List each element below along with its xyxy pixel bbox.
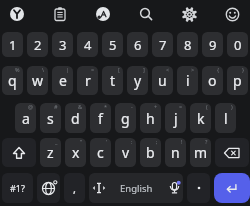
button[interactable]: 7	[152, 32, 173, 57]
button[interactable]: o	[202, 66, 223, 95]
staticText: English	[120, 182, 153, 195]
button[interactable]: x	[65, 138, 86, 167]
button[interactable]	[187, 173, 210, 203]
button[interactable]: f	[90, 103, 111, 133]
button[interactable]: h	[140, 103, 161, 133]
button[interactable]: a	[15, 103, 36, 133]
staticText: \	[42, 66, 45, 73]
button[interactable]: s	[40, 103, 61, 133]
button[interactable]: #1?	[2, 173, 33, 203]
staticText: #	[54, 103, 58, 110]
staticText: %	[15, 66, 20, 73]
button[interactable]	[37, 173, 60, 203]
button[interactable]: u	[152, 66, 173, 95]
staticText: p	[233, 71, 242, 90]
button[interactable]	[214, 173, 250, 203]
staticText: '	[106, 138, 108, 145]
staticText: r	[85, 71, 91, 90]
staticText: o	[208, 71, 217, 90]
button[interactable]: y	[127, 66, 148, 95]
staticText: =	[91, 66, 95, 73]
staticText: 5	[109, 36, 117, 54]
staticText: d	[71, 109, 80, 128]
button[interactable]: m	[190, 138, 211, 167]
button[interactable]: c	[90, 138, 111, 167]
staticText: b	[146, 143, 155, 162]
button[interactable]: q	[2, 66, 23, 95]
button[interactable]: t	[102, 66, 123, 95]
staticText: >	[191, 66, 195, 73]
staticText: }	[242, 66, 245, 73]
staticText: #1?	[10, 182, 25, 194]
button[interactable]: 9	[202, 32, 223, 57]
staticText: !	[181, 138, 183, 145]
staticText: *	[104, 103, 108, 110]
button[interactable]: g	[115, 103, 136, 133]
button[interactable]: 0	[227, 32, 248, 57]
staticText: -	[131, 103, 133, 110]
button[interactable]: z	[40, 138, 61, 167]
button[interactable]: n	[165, 138, 186, 167]
staticText: 9	[209, 36, 217, 54]
staticText: w	[32, 71, 44, 90]
staticText: _	[55, 138, 58, 145]
button[interactable]	[176, 1, 202, 27]
staticText: ,	[73, 181, 76, 196]
button[interactable]: English	[89, 173, 183, 203]
staticText: 1	[9, 36, 17, 54]
staticText: 2	[34, 36, 42, 54]
button[interactable]: d	[65, 103, 86, 133]
button[interactable]: 6	[127, 32, 148, 57]
staticText: s	[47, 109, 54, 128]
button[interactable]	[90, 1, 116, 27]
staticText: 8	[184, 36, 192, 54]
staticText: :	[131, 138, 133, 145]
staticText: i	[186, 71, 190, 90]
staticText: (	[206, 103, 208, 110]
button[interactable]: 5	[102, 32, 123, 57]
button[interactable]: r	[77, 66, 98, 95]
staticText: 3	[59, 36, 67, 54]
button[interactable]: w	[27, 66, 48, 95]
button[interactable]: 1	[2, 32, 23, 57]
staticText: @	[28, 103, 33, 110]
staticText: h	[146, 109, 155, 128]
button[interactable]: p	[227, 66, 248, 95]
staticText: n	[171, 143, 180, 162]
staticText: 6	[134, 36, 142, 54]
button[interactable]: ,	[64, 173, 85, 203]
button[interactable]: v	[115, 138, 136, 167]
button[interactable]: 3	[52, 32, 73, 57]
staticText: x	[72, 143, 80, 162]
staticText: a	[22, 109, 30, 128]
staticText: c	[97, 143, 104, 162]
button[interactable]: l	[215, 103, 236, 133]
button[interactable]: 8	[177, 32, 198, 57]
button[interactable]	[133, 1, 159, 27]
button[interactable]	[2, 138, 36, 167]
button[interactable]: e	[52, 66, 73, 95]
button[interactable]: 2	[27, 32, 48, 57]
staticText: e	[59, 71, 67, 90]
staticText: 0	[234, 36, 242, 54]
staticText: |	[66, 66, 70, 73]
staticText: g	[121, 109, 130, 128]
button[interactable]: k	[190, 103, 211, 133]
button[interactable]: 4	[77, 32, 98, 57]
staticText: v	[122, 143, 130, 162]
button[interactable]: j	[165, 103, 186, 133]
button[interactable]: b	[140, 138, 161, 167]
button[interactable]	[4, 1, 30, 27]
staticText: &	[78, 103, 83, 110]
staticText: +	[154, 103, 158, 110]
staticText: z	[47, 143, 54, 162]
staticText: ?	[205, 138, 208, 145]
staticText: l	[224, 109, 228, 128]
button[interactable]	[215, 138, 249, 167]
staticText: k	[197, 109, 205, 128]
button[interactable]	[47, 1, 73, 27]
button[interactable]	[219, 1, 245, 27]
staticText: m	[194, 143, 208, 162]
button[interactable]: i	[177, 66, 198, 95]
staticText: )	[231, 103, 233, 110]
